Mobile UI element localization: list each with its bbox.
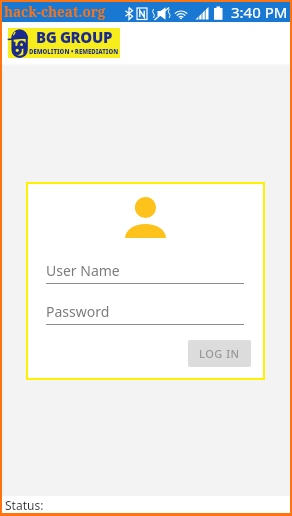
staticText: LOG IN [199,346,240,361]
staticText: Status: [5,497,44,513]
staticText: Password [46,302,110,321]
staticText: DEMOLITION • REMEDIATION [29,48,119,56]
staticText: hack-cheat.org [4,3,106,21]
button[interactable]: BG Group logo [8,28,120,58]
staticText: 3:40 PM [231,2,288,22]
staticText: BG GROUP [36,27,112,47]
button[interactable]: LOG IN [188,340,251,367]
button[interactable]: User Name [46,261,244,284]
other: Bluetooth, NFC, silent, Wi-Fi, signal, b… [2,2,290,22]
staticText: User Name [46,261,120,280]
button[interactable]: Password [46,302,244,325]
other: User avatar [121,192,171,242]
